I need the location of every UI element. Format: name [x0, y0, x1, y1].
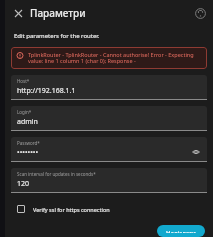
button[interactable]: Verify ssl for https connection: [11, 203, 207, 215]
staticText: admin: [17, 117, 38, 127]
staticText: http://192.168.1.1: [17, 86, 76, 96]
staticText: Scan interval for updates in seconds*: [17, 171, 96, 177]
staticText: Password*: [17, 140, 40, 146]
staticText: Verify ssl for https connection: [33, 206, 110, 213]
staticText: TplinkRouter - TplinkRouter - Cannot aut…: [28, 51, 202, 65]
staticText: Параметри: [30, 6, 86, 20]
staticText: 120: [17, 179, 30, 189]
staticText: Login*: [17, 109, 32, 115]
button[interactable]: Host*: [11, 75, 207, 100]
staticText: Host*: [17, 78, 30, 84]
button[interactable]: Password*: [11, 137, 207, 162]
button[interactable]: Help: [192, 5, 208, 21]
button[interactable]: Login*: [11, 106, 207, 131]
button[interactable]: Scan interval for updates in seconds*: [11, 168, 207, 193]
staticText: ••••••••: [17, 148, 39, 158]
staticText: Надіслати: [166, 229, 196, 233]
button[interactable]: Close: [9, 4, 27, 22]
staticText: Edit parameters for the router.: [14, 32, 100, 40]
button[interactable]: Надіслати: [157, 225, 205, 237]
button[interactable]: Show password: [190, 146, 202, 158]
